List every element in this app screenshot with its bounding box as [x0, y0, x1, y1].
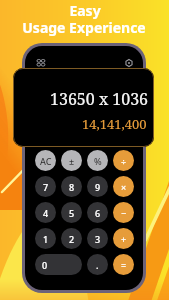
staticText: .: [96, 259, 99, 271]
button[interactable]: .: [87, 254, 108, 275]
staticText: %: [94, 155, 102, 167]
staticText: 14,141,400: [82, 115, 147, 133]
button[interactable]: =: [113, 254, 134, 275]
button[interactable]: AC: [35, 150, 56, 171]
button[interactable]: 5: [61, 202, 82, 223]
button[interactable]: %: [87, 150, 108, 171]
button[interactable]: 9: [87, 176, 108, 197]
staticText: 3: [95, 233, 101, 245]
staticText: 4: [43, 207, 49, 219]
staticText: 2: [69, 233, 75, 245]
staticText: Usage Experience: [22, 18, 146, 37]
staticText: ÷: [121, 155, 127, 167]
button[interactable]: 0: [35, 254, 82, 275]
staticText: 6: [95, 207, 101, 219]
button[interactable]: Settings: [122, 56, 136, 70]
button[interactable]: 7: [35, 176, 56, 197]
staticText: 8: [69, 181, 75, 193]
button[interactable]: 6: [87, 202, 108, 223]
button[interactable]: 3: [87, 228, 108, 249]
staticText: 7: [43, 181, 49, 193]
button[interactable]: Apps: [34, 56, 48, 70]
staticText: Easy: [69, 1, 101, 20]
button[interactable]: −: [113, 202, 134, 223]
button[interactable]: 8: [61, 176, 82, 197]
button[interactable]: 2: [61, 228, 82, 249]
staticText: ±: [69, 155, 75, 167]
staticText: 5: [69, 207, 75, 219]
staticText: 0: [42, 259, 48, 271]
staticText: 13650 x 1036: [50, 88, 149, 110]
button[interactable]: 4: [35, 202, 56, 223]
button[interactable]: ×: [113, 176, 134, 197]
staticText: =: [121, 259, 127, 271]
button[interactable]: ±: [61, 150, 82, 171]
button[interactable]: 1: [35, 228, 56, 249]
staticText: 9: [95, 181, 101, 193]
staticText: ×: [121, 181, 127, 193]
staticText: −: [121, 207, 127, 219]
button[interactable]: ÷: [113, 150, 134, 171]
button[interactable]: +: [113, 228, 134, 249]
staticText: +: [121, 233, 127, 245]
staticText: 1: [43, 233, 49, 245]
staticText: AC: [40, 155, 52, 167]
